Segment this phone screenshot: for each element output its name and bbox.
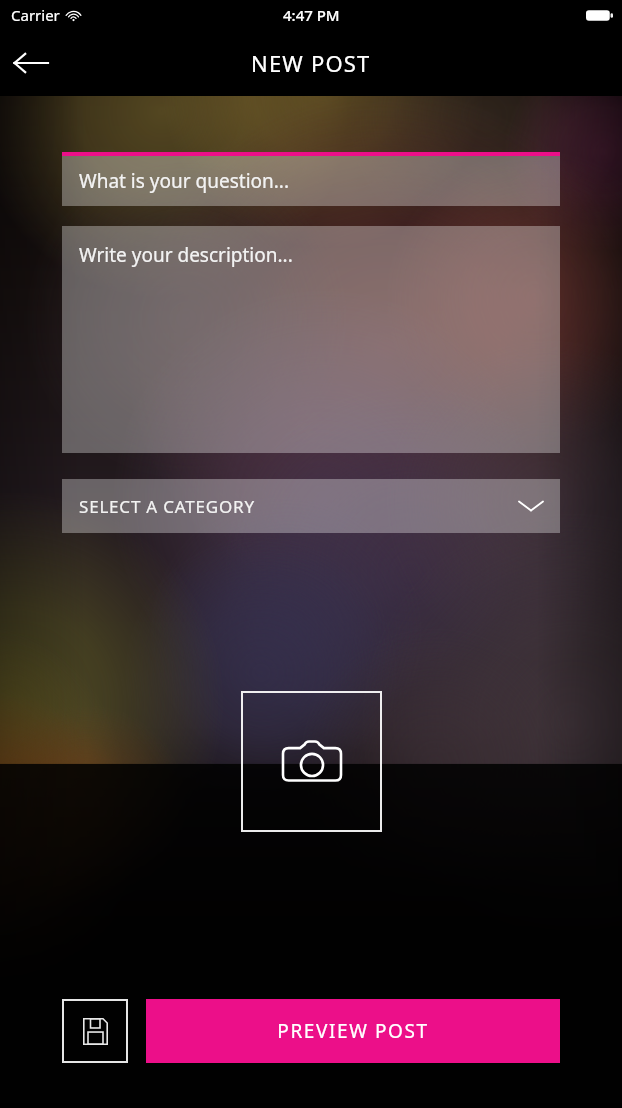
staticText: 4:47 PM xyxy=(283,5,340,25)
staticText: PREVIEW POST xyxy=(277,1018,429,1044)
button[interactable]: Write your description... xyxy=(62,226,560,453)
button[interactable]: Back xyxy=(0,32,62,94)
button[interactable]: Save draft xyxy=(62,999,128,1063)
button[interactable]: Add photo xyxy=(241,691,382,832)
button[interactable]: What is your question... xyxy=(62,152,560,206)
staticText: What is your question... xyxy=(79,168,290,194)
button[interactable]: SELECT A CATEGORY xyxy=(62,479,560,533)
button[interactable]: PREVIEW POST xyxy=(146,999,560,1063)
staticText: Write your description... xyxy=(79,242,293,268)
staticText: SELECT A CATEGORY xyxy=(79,495,519,518)
staticText: Carrier xyxy=(11,5,60,25)
staticText: NEW POST xyxy=(251,48,371,78)
